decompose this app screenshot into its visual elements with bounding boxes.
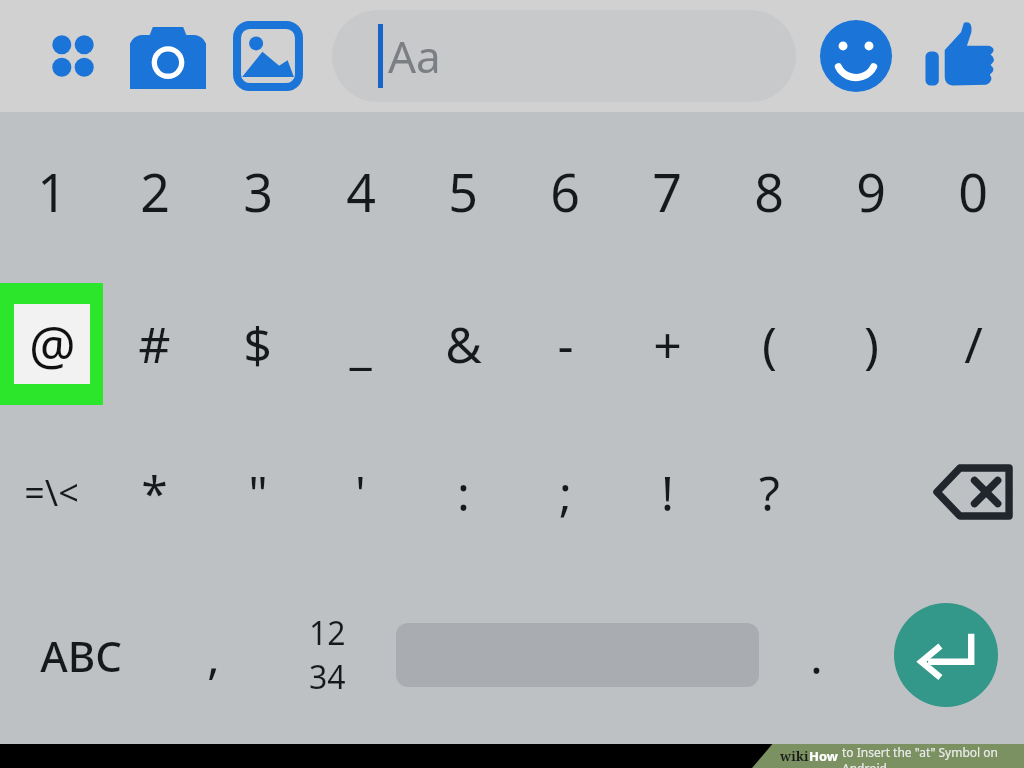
staticText: 12	[309, 611, 346, 655]
button[interactable]: (	[718, 270, 820, 418]
staticText: 3	[243, 156, 273, 227]
button[interactable]: :	[412, 418, 514, 566]
staticText: wiki	[780, 747, 809, 765]
button[interactable]: #	[103, 270, 206, 418]
button[interactable]: .	[764, 566, 868, 744]
button[interactable]: -	[514, 270, 616, 418]
button[interactable]: '	[309, 418, 412, 566]
button[interactable]: Like	[906, 6, 1016, 106]
button[interactable]: ABC	[0, 566, 161, 744]
staticText: 4	[346, 156, 376, 227]
staticText: &	[445, 310, 482, 378]
button[interactable]: $	[206, 270, 309, 418]
button[interactable]: ?	[718, 418, 820, 566]
staticText: ,	[207, 623, 220, 688]
button[interactable]: Camera	[118, 6, 218, 106]
staticText: #	[138, 310, 171, 378]
button[interactable]: Stickers	[806, 6, 906, 106]
button[interactable]: Aa	[332, 10, 796, 102]
button[interactable]: ,	[161, 566, 265, 744]
staticText: ?	[759, 460, 780, 525]
staticText: How	[809, 747, 842, 765]
staticText: =\<	[24, 468, 79, 517]
button[interactable]: 8	[718, 112, 820, 270]
button[interactable]: =\<	[0, 418, 103, 566]
staticText: /	[964, 310, 983, 378]
staticText: 6	[550, 156, 580, 227]
button[interactable]: 0	[922, 112, 1024, 270]
staticText: !	[661, 460, 674, 525]
button[interactable]: "	[206, 418, 309, 566]
button[interactable]: 6	[514, 112, 616, 270]
button[interactable]: _	[309, 270, 412, 418]
button[interactable]: @	[0, 270, 103, 418]
staticText: 9	[856, 156, 886, 227]
button[interactable]: ;	[514, 418, 616, 566]
staticText: .	[810, 623, 823, 688]
staticText: :	[457, 460, 470, 525]
staticText: ABC	[40, 627, 122, 684]
button[interactable]: Enter	[894, 603, 998, 707]
staticText: (	[762, 310, 777, 378]
button[interactable]: /	[922, 270, 1024, 418]
staticText: $	[243, 310, 272, 378]
button[interactable]: 4	[309, 112, 412, 270]
staticText: )	[864, 310, 879, 378]
staticText: _	[349, 310, 372, 378]
staticText: 5	[448, 156, 478, 227]
staticText: 7	[652, 156, 682, 227]
staticText: "	[248, 460, 268, 525]
staticText: '	[355, 460, 366, 525]
button[interactable]: More options	[28, 6, 118, 106]
staticText: @	[29, 309, 76, 380]
button[interactable]: Backspace	[922, 418, 1024, 566]
staticText: -	[557, 310, 574, 378]
button[interactable]: +	[616, 270, 718, 418]
button[interactable]: *	[103, 418, 206, 566]
staticText: 34	[309, 655, 346, 699]
button[interactable]: 9	[820, 112, 922, 270]
staticText: +	[653, 310, 682, 378]
button[interactable]: 2	[103, 112, 206, 270]
staticText: 0	[958, 156, 988, 227]
button[interactable]: 3	[206, 112, 309, 270]
button[interactable]: Photos	[218, 6, 318, 106]
staticText: 2	[140, 156, 170, 227]
button[interactable]: !	[616, 418, 718, 566]
button[interactable]: 7	[616, 112, 718, 270]
button[interactable]: &	[412, 270, 514, 418]
staticText: 1	[37, 156, 67, 227]
button[interactable]: 1	[0, 112, 103, 270]
staticText: *	[141, 460, 168, 525]
staticText: Aa	[388, 26, 441, 86]
staticText: ;	[559, 460, 572, 525]
button[interactable]: Numbers	[265, 566, 390, 744]
staticText: 8	[754, 156, 784, 227]
staticText: to Insert the "at" Symbol on Android	[842, 744, 1024, 768]
button[interactable]: 5	[412, 112, 514, 270]
button[interactable]: )	[820, 270, 922, 418]
